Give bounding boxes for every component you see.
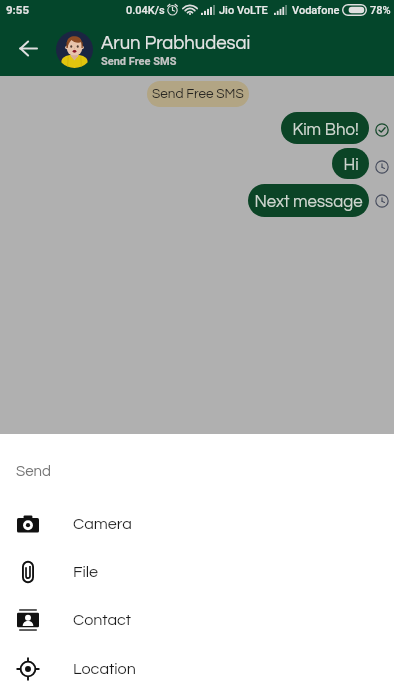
button[interactable]: Camera [0, 499, 394, 548]
staticText: Vodafone [292, 4, 340, 17]
button[interactable]: Hi [332, 148, 369, 179]
staticText: 9:55 [6, 3, 30, 16]
button[interactable]: Contact [0, 595, 394, 644]
staticText: Send Free SMS [152, 87, 244, 101]
button[interactable]: Back [8, 28, 48, 68]
staticText: 0.04K/s [126, 4, 165, 17]
button[interactable]: Next message [248, 184, 369, 217]
staticText: Camera [73, 516, 132, 533]
staticText: Jio VoLTE [219, 4, 268, 17]
staticText: Kim Bho! [292, 121, 359, 138]
staticText: File [73, 564, 99, 581]
staticText: Hi [343, 156, 359, 173]
button[interactable]: Kim Bho! [281, 112, 369, 144]
staticText: Next message [254, 193, 363, 210]
staticText: Send [16, 464, 51, 479]
staticText: 78% [370, 4, 391, 17]
button[interactable]: Send Free SMS [147, 81, 249, 107]
staticText: Arun Prabhudesai [101, 34, 251, 53]
button[interactable]: Contact photo [56, 31, 93, 68]
staticText: Contact [73, 612, 132, 629]
staticText: Location [73, 661, 136, 678]
staticText: Send Free SMS [101, 55, 177, 68]
button[interactable]: File [0, 547, 394, 596]
button[interactable]: Location [0, 644, 394, 693]
